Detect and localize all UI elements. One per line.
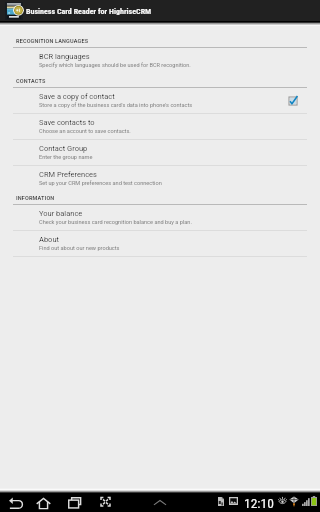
staticText: Set up your CRM preferences and test con… [39, 180, 162, 187]
button[interactable]: Save a copy of contact [0, 88, 320, 113]
button[interactable]: Back [7, 495, 24, 512]
staticText: Save a copy of contact [39, 92, 115, 101]
button[interactable]: Recent apps [65, 494, 82, 511]
button[interactable]: Save a copy of contact [286, 94, 299, 107]
button[interactable]: Show notifications [152, 495, 168, 511]
staticText: About [39, 235, 59, 244]
staticText: CONTACTS [16, 78, 46, 84]
button[interactable]: BCR languages [0, 48, 320, 73]
staticText: Save contacts to [39, 118, 95, 127]
staticText: Contact Group [39, 144, 88, 153]
button[interactable]: CRM Preferences [0, 166, 320, 191]
button[interactable]: Save contacts to [0, 114, 320, 139]
staticText: Business Card Reader for HighriseCRM [26, 7, 152, 16]
staticText: CRM Preferences [39, 170, 97, 179]
staticText: BCR languages [39, 52, 90, 61]
staticText: Store a copy of the business card's data… [39, 102, 193, 109]
button[interactable]: Contact Group [0, 140, 320, 165]
staticText: Check your business card recognition bal… [39, 219, 192, 226]
staticText: Specify which languages should be used f… [39, 62, 191, 69]
button[interactable]: Home [35, 495, 52, 512]
staticText: Choose an account to save contacts. [39, 128, 131, 135]
staticText: RECOGNITION LANGUAGES [16, 38, 89, 44]
button[interactable]: About [0, 231, 320, 256]
staticText: Enter the group name [39, 154, 93, 161]
button[interactable]: Your balance [0, 205, 320, 230]
staticText: Find out about our new products [39, 245, 120, 252]
staticText: Your balance [39, 209, 83, 218]
button[interactable]: Screenshot [98, 494, 113, 509]
staticText: 12:10 [244, 495, 274, 511]
staticText: INFORMATION [16, 195, 55, 201]
